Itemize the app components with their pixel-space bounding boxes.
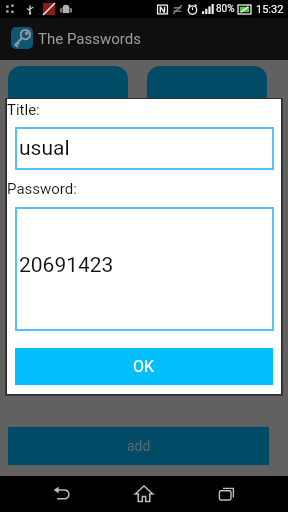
staticText: usual xyxy=(19,136,70,161)
staticText: The Passwords xyxy=(38,30,141,48)
button[interactable] xyxy=(147,66,267,100)
button[interactable]: usual xyxy=(15,127,274,170)
staticText: OK xyxy=(133,357,155,376)
staticText: 20691423 xyxy=(19,253,114,278)
button[interactable]: OK xyxy=(15,348,273,385)
staticText: add xyxy=(127,438,151,454)
button[interactable]: 20691423 xyxy=(15,207,274,331)
staticText: Title: xyxy=(7,101,40,119)
staticText: 15:32 xyxy=(256,3,284,16)
button[interactable]: App icon xyxy=(11,27,33,49)
button[interactable]: Back xyxy=(41,476,83,512)
button[interactable]: add xyxy=(8,427,269,465)
staticText: Password: xyxy=(7,180,77,198)
button[interactable]: Home xyxy=(123,476,165,512)
button[interactable] xyxy=(8,66,128,100)
staticText: 80% xyxy=(216,3,235,15)
button[interactable]: Recents xyxy=(206,476,248,512)
